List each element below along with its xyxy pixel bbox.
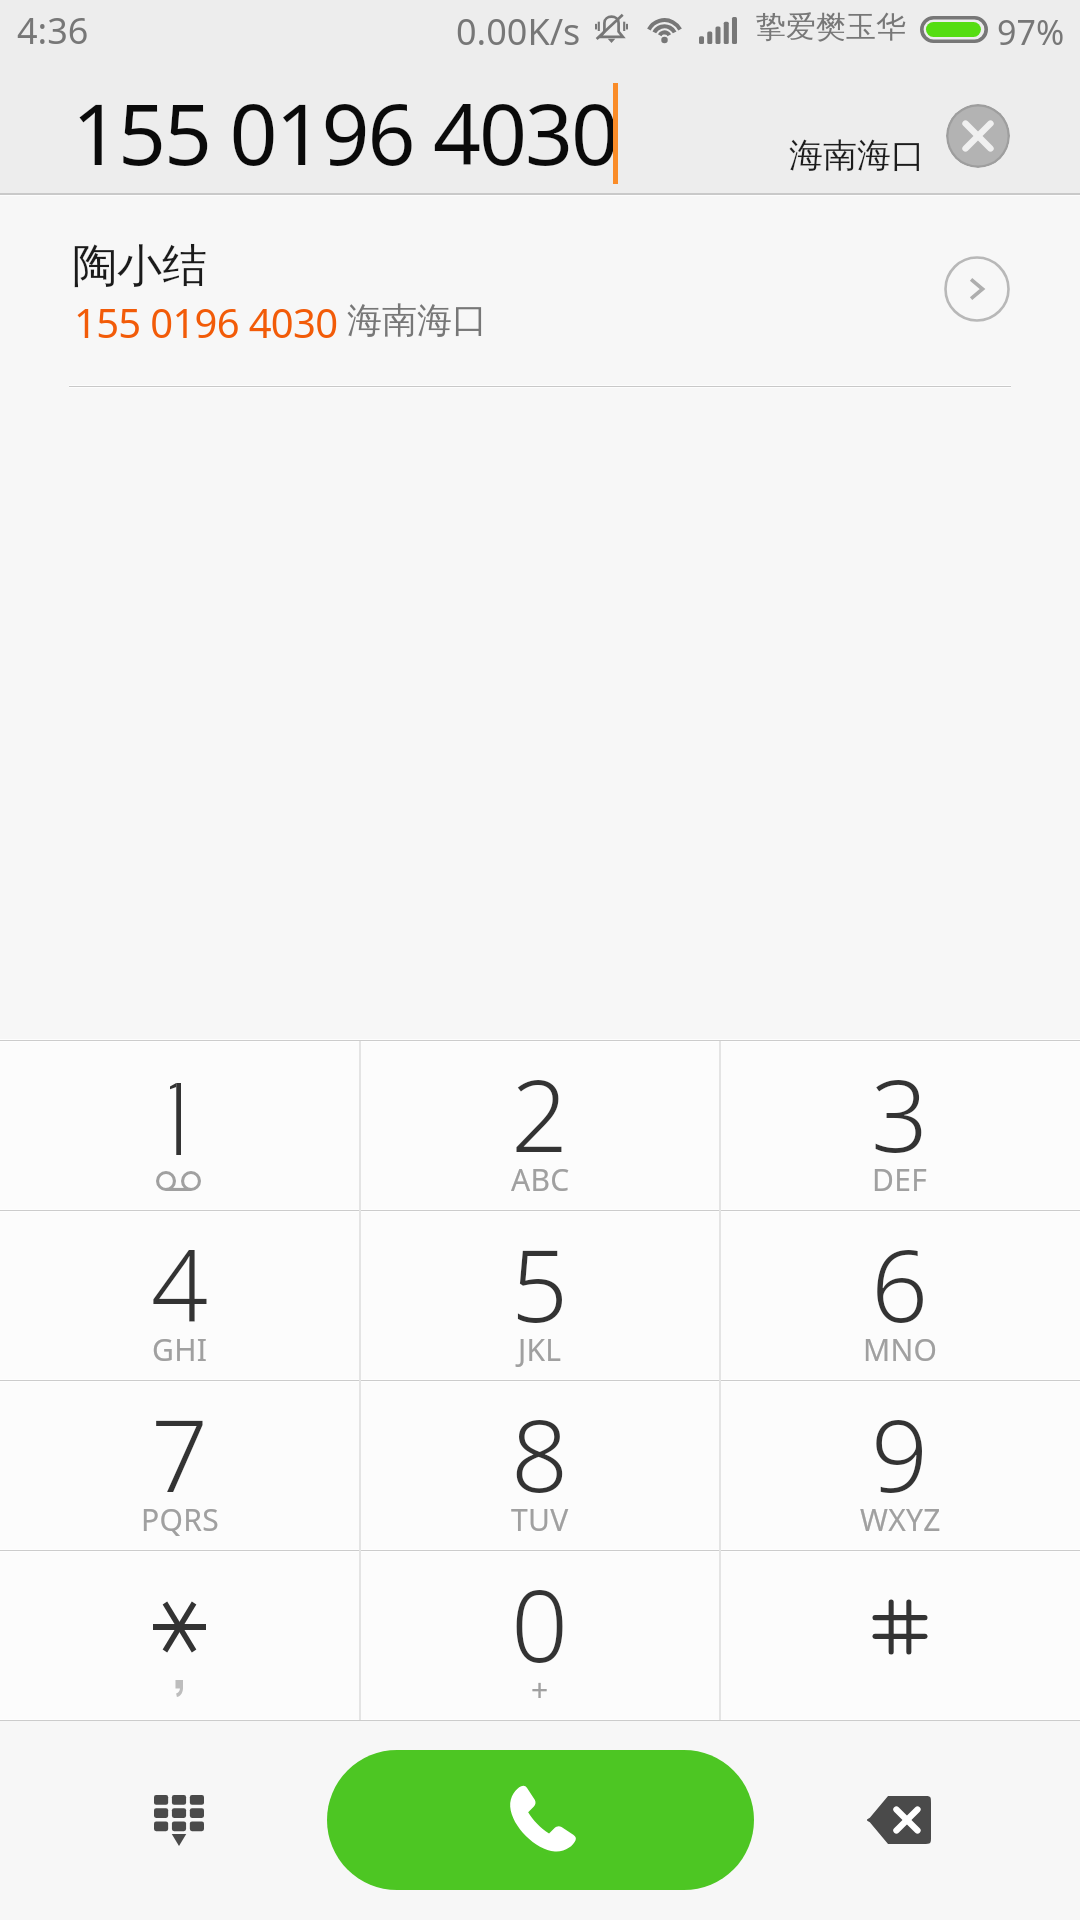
staticText: 6 [871,1215,929,1351]
staticText: 97% [997,9,1065,55]
staticText: JKL [518,1329,562,1370]
button[interactable]: 陶小结 [0,195,1080,387]
staticText: WXYZ [860,1499,941,1540]
staticText: DEF [872,1159,928,1200]
staticText: 0 [511,1555,569,1691]
button[interactable] [720,1551,1080,1721]
staticText: 4:36 [17,6,89,55]
button[interactable]: 7 [0,1381,360,1551]
staticText: TUV [511,1499,569,1540]
staticText: 155 0196 4030 [74,295,338,349]
button[interactable]: Contact details [944,256,1010,322]
staticText: 0.00K/s [456,7,581,56]
staticText: 8 [511,1385,569,1521]
staticText: PQRS [141,1499,219,1540]
staticText: 7 [151,1385,209,1521]
button[interactable]: Clear [946,104,1010,168]
staticText: 5 [511,1215,569,1351]
button[interactable]: Call [327,1750,754,1890]
button[interactable] [0,1041,360,1211]
button[interactable]: 8 [360,1381,720,1551]
staticText: 2 [511,1045,569,1181]
button[interactable]: 5 [360,1211,720,1381]
button[interactable]: Backspace [838,1760,958,1880]
staticText: GHI [152,1329,208,1370]
button[interactable]: 4 [0,1211,360,1381]
staticText: MNO [863,1329,938,1370]
button[interactable]: 6 [720,1211,1080,1381]
staticText: 挚爱樊玉华 [756,8,906,46]
staticText: 4 [151,1215,209,1351]
staticText: 155 0196 4030 [72,75,617,189]
button[interactable]: 2 [360,1041,720,1211]
button[interactable]: 9 [720,1381,1080,1551]
staticText: 3 [871,1045,929,1181]
button[interactable]: 0 [360,1551,720,1721]
staticText: 9 [871,1385,929,1521]
staticText: ABC [511,1159,570,1200]
staticText: 海南海口 [789,134,925,177]
button[interactable]: Hide keypad [119,1760,239,1880]
button[interactable]: 3 [720,1041,1080,1211]
staticText: + [531,1669,549,1710]
staticText: 海南海口 [347,298,487,342]
button[interactable] [0,1551,360,1721]
staticText: 陶小结 [72,238,207,295]
